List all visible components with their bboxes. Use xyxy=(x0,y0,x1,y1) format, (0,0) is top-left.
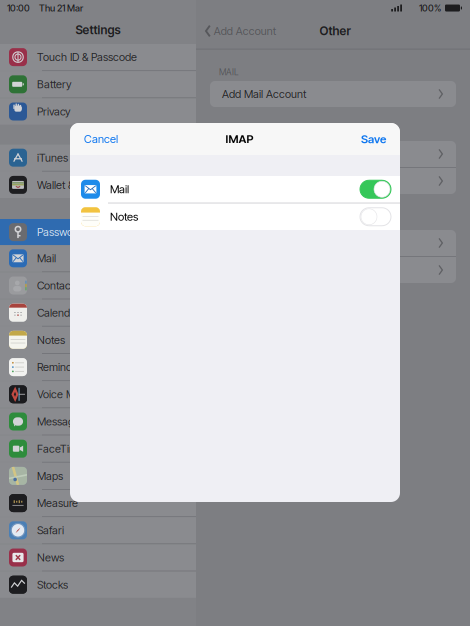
staticText: Battery xyxy=(37,78,72,91)
button[interactable]: Notes xyxy=(0,327,196,353)
staticText: IMAP xyxy=(225,132,253,146)
button[interactable]: Passwords & Accounts xyxy=(0,219,196,245)
staticText: Mail xyxy=(110,182,129,196)
button[interactable]: Voice Memos xyxy=(0,381,196,407)
staticText: Cancel xyxy=(84,132,118,146)
staticText: Privacy xyxy=(37,105,71,118)
button[interactable] xyxy=(210,141,456,167)
staticText: Settings xyxy=(75,23,120,37)
staticText: Wallet & Apple Pay xyxy=(37,178,124,191)
staticText: Thu 21 Mar xyxy=(39,2,83,14)
button[interactable]: FaceTime xyxy=(0,436,196,462)
staticText: FaceTime xyxy=(37,442,84,455)
staticText: Other xyxy=(319,24,350,38)
button[interactable]: Privacy xyxy=(0,98,196,125)
staticText: 100% xyxy=(419,2,441,14)
button[interactable] xyxy=(210,257,456,283)
button[interactable]: Messages xyxy=(0,408,196,435)
button[interactable]: Add Account xyxy=(196,21,276,41)
staticText: Messages xyxy=(37,415,85,428)
button[interactable]: Cancel xyxy=(70,126,118,152)
staticText: Stocks xyxy=(37,578,68,591)
button[interactable]: News xyxy=(0,544,196,571)
button[interactable]: Contacts xyxy=(0,272,196,299)
button[interactable]: Notes xyxy=(70,203,400,230)
staticText: Calendar xyxy=(37,306,80,319)
staticText: Save xyxy=(361,132,386,146)
button[interactable]: Add Mail Account xyxy=(210,81,456,107)
button[interactable]: Mail xyxy=(70,176,400,202)
staticText: Notes xyxy=(110,210,138,224)
staticText: Notes xyxy=(37,333,65,346)
button[interactable]: Reminders xyxy=(0,354,196,380)
staticText: Maps xyxy=(37,469,63,482)
button[interactable]: Wallet & Apple Pay xyxy=(0,172,196,198)
button[interactable]: Save xyxy=(361,126,400,152)
button[interactable] xyxy=(210,168,456,194)
staticText: 10:00 xyxy=(7,2,30,14)
staticText: iTunes & App Store xyxy=(37,151,126,164)
button[interactable]: iTunes & App Store xyxy=(0,145,196,171)
staticText: Passwords & Accounts xyxy=(37,225,144,239)
staticText: Measure xyxy=(37,496,78,510)
staticText: Contacts xyxy=(37,279,79,292)
staticText: Add Mail Account xyxy=(222,87,306,101)
staticText: MAIL xyxy=(219,67,239,77)
staticText: Reminders xyxy=(37,360,87,374)
button[interactable]: Measure xyxy=(0,490,196,516)
button[interactable]: Touch ID & Passcode xyxy=(0,44,196,70)
button[interactable]: Battery xyxy=(0,71,196,97)
staticText: Safari xyxy=(37,524,64,537)
staticText: Mail xyxy=(37,252,56,265)
button[interactable]: Mail xyxy=(0,245,196,271)
button[interactable]: Maps xyxy=(0,463,196,489)
button[interactable]: Safari xyxy=(0,517,196,543)
button[interactable]: Stocks xyxy=(0,572,196,598)
staticText: Touch ID & Passcode xyxy=(37,50,137,64)
staticText: Add Account xyxy=(214,24,276,38)
staticText: Voice Memos xyxy=(37,388,101,401)
staticText: News xyxy=(37,551,64,564)
button[interactable] xyxy=(210,230,456,256)
button[interactable]: Calendar xyxy=(0,300,196,326)
